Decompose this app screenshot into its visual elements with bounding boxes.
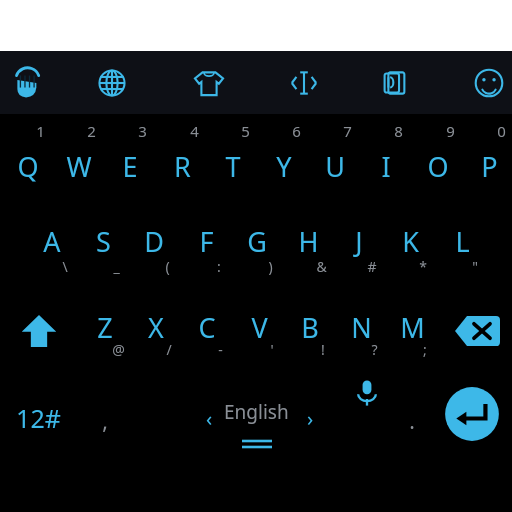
staticText: ›: [307, 405, 314, 429]
button[interactable]: ?: [350, 338, 398, 360]
button[interactable]: Theme: [190, 64, 228, 102]
staticText: G: [247, 223, 267, 260]
button[interactable]: Change language: [93, 64, 131, 102]
button[interactable]: #: [348, 255, 396, 277]
button[interactable]: /: [145, 338, 193, 360]
button[interactable]: Emoji: [470, 64, 508, 102]
staticText: _: [113, 257, 120, 276]
staticText: O: [427, 148, 449, 185]
staticText: U: [325, 148, 345, 185]
button[interactable]: M: [388, 306, 436, 349]
staticText: English: [224, 399, 289, 425]
button[interactable]: S: [79, 220, 127, 263]
button[interactable]: C: [183, 306, 231, 349]
button[interactable]: Q: [4, 145, 52, 188]
button[interactable]: English: [180, 396, 332, 442]
button[interactable]: G: [233, 220, 281, 263]
button[interactable]: E: [106, 145, 154, 188]
button[interactable]: @: [94, 338, 142, 360]
button[interactable]: Cursor control: [285, 64, 323, 102]
button[interactable]: R: [158, 145, 206, 188]
button[interactable]: ;: [401, 338, 449, 360]
button[interactable]: 9: [426, 119, 474, 143]
staticText: 5: [241, 121, 250, 141]
staticText: F: [199, 223, 214, 260]
button[interactable]: Backspace: [452, 310, 502, 352]
button[interactable]: H: [284, 220, 332, 263]
staticText: Y: [276, 148, 292, 185]
staticText: 7: [343, 121, 352, 141]
button[interactable]: 4: [170, 119, 218, 143]
button[interactable]: B: [286, 306, 334, 349]
staticText: (: [165, 257, 170, 276]
staticText: L: [455, 223, 470, 260]
button[interactable]: (: [143, 255, 191, 277]
staticText: ‹: [206, 405, 213, 429]
staticText: Z: [97, 309, 113, 346]
button[interactable]: I: [362, 145, 410, 188]
button[interactable]: _: [92, 255, 140, 277]
staticText: :: [217, 257, 221, 276]
button[interactable]: U: [311, 145, 359, 188]
button[interactable]: ": [451, 255, 499, 277]
button[interactable]: V: [235, 306, 283, 349]
button[interactable]: P: [465, 145, 512, 188]
staticText: C: [198, 309, 216, 346]
staticText: ,: [102, 407, 108, 436]
button[interactable]: 5: [221, 119, 269, 143]
staticText: 9: [446, 121, 455, 141]
button[interactable]: 8: [374, 119, 422, 143]
staticText: R: [174, 148, 191, 185]
button[interactable]: Y: [260, 145, 308, 188]
button[interactable]: O: [414, 145, 462, 188]
button[interactable]: Comma: [81, 404, 129, 438]
button[interactable]: J: [335, 220, 383, 263]
staticText: @: [112, 340, 125, 359]
button[interactable]: 2: [67, 119, 115, 143]
button[interactable]: D: [130, 220, 178, 263]
staticText: D: [144, 223, 164, 260]
staticText: ): [268, 257, 273, 276]
staticText: .: [409, 407, 415, 436]
button[interactable]: !: [299, 338, 347, 360]
button[interactable]: \: [41, 255, 89, 277]
button[interactable]: 3: [118, 119, 166, 143]
button[interactable]: :: [195, 255, 243, 277]
button[interactable]: L: [438, 220, 486, 263]
staticText: I: [381, 148, 391, 185]
button[interactable]: &: [297, 255, 345, 277]
button[interactable]: N: [337, 306, 385, 349]
staticText: Q: [17, 148, 39, 185]
button[interactable]: 6: [272, 119, 320, 143]
button[interactable]: A: [28, 220, 76, 263]
staticText: ": [472, 257, 478, 276]
button[interactable]: Gesture typing: [9, 64, 47, 102]
button[interactable]: Z: [81, 306, 129, 349]
button[interactable]: Period: [388, 404, 436, 438]
staticText: P: [481, 148, 498, 185]
staticText: H: [298, 223, 319, 260]
staticText: !: [321, 340, 325, 359]
button[interactable]: ': [248, 338, 296, 360]
button[interactable]: ): [246, 255, 294, 277]
button[interactable]: 0: [477, 119, 512, 143]
button[interactable]: F: [182, 220, 230, 263]
button[interactable]: X: [132, 306, 180, 349]
button[interactable]: 7: [323, 119, 371, 143]
staticText: X: [148, 309, 164, 346]
button[interactable]: *: [399, 255, 447, 277]
staticText: ;: [423, 340, 427, 359]
button[interactable]: Symbols: [14, 398, 62, 438]
button[interactable]: Shift: [15, 310, 63, 352]
button[interactable]: Voice input: [354, 378, 380, 408]
button[interactable]: Clipboard: [377, 64, 415, 102]
button[interactable]: K: [386, 220, 434, 263]
button[interactable]: T: [209, 145, 257, 188]
staticText: T: [225, 148, 241, 185]
staticText: J: [355, 223, 363, 260]
staticText: 8: [394, 121, 403, 141]
button[interactable]: Enter: [444, 386, 500, 442]
button[interactable]: 1: [16, 119, 64, 143]
button[interactable]: -: [196, 338, 244, 360]
button[interactable]: W: [55, 145, 103, 188]
